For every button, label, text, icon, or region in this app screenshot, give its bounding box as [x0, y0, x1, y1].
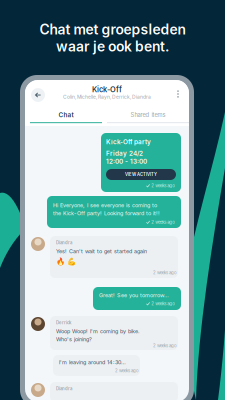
staticText: Who's joining?	[56, 336, 92, 343]
staticText: 2 weeks ago	[115, 368, 139, 373]
staticText: Colin, Michelle, Rayn, Derrick, Diandra	[63, 94, 151, 100]
staticText: 2 weeks ago	[151, 183, 175, 188]
staticText: VIEW ACTIVITY	[125, 172, 157, 177]
staticText: 12:00 - 13:00	[106, 157, 147, 165]
staticText: Diandra	[56, 386, 72, 391]
button[interactable]: Back	[31, 88, 45, 102]
button[interactable]: Chat	[25, 108, 107, 124]
staticText: Friday 24/2	[106, 149, 143, 157]
staticText: Derrick	[56, 320, 71, 325]
staticText: 2 weeks ago	[153, 270, 177, 275]
staticText: the Kick-Off party! Looking forward to i…	[53, 210, 160, 217]
button[interactable]: Shared items	[107, 108, 189, 124]
staticText: Chat	[58, 111, 73, 119]
staticText: Yes! Can't wait to get started again	[56, 248, 147, 255]
staticText: waar je ook bent.	[56, 38, 169, 55]
button[interactable]: VIEW ACTIVITY	[106, 169, 176, 180]
staticText: 2 weeks ago	[151, 219, 175, 225]
staticText: 🔥 💪	[56, 257, 76, 266]
staticText: Hi Everyone, I see everyone is coming to	[53, 202, 157, 209]
staticText: Woop Woop! I'm coming by bike.	[56, 328, 140, 335]
staticText: Kick-Off party	[106, 138, 151, 146]
staticText: I'm leaving around 14:30…	[59, 359, 126, 366]
button[interactable]: Kick-Off	[42, 85, 172, 101]
staticText: Great! See you tomorrow…	[99, 292, 169, 299]
button[interactable]: More options	[173, 88, 183, 100]
staticText: 2 weeks ago	[153, 343, 177, 348]
staticText: Kick-Off	[92, 85, 122, 94]
staticText: Shared items	[130, 111, 165, 118]
staticText: Chat met groepsleden	[39, 21, 185, 38]
staticText: Diandra	[56, 240, 72, 245]
staticText: 2 weeks ago	[151, 301, 175, 306]
